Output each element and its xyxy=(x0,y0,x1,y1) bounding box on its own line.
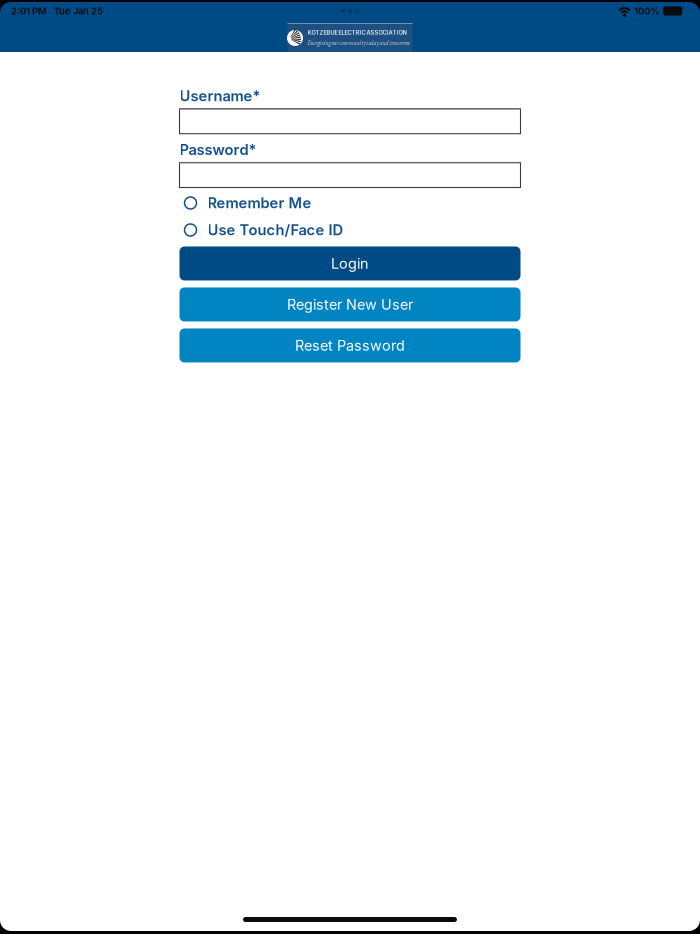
button[interactable]: Login xyxy=(179,246,520,280)
staticText: Register New User xyxy=(287,296,413,313)
button[interactable]: Use Touch/Face ID xyxy=(179,216,520,243)
staticText: Reset Password xyxy=(295,337,405,354)
staticText: Tue Jan 25 xyxy=(54,5,103,17)
staticText: 100% xyxy=(634,5,659,17)
staticText: Remember Me xyxy=(207,194,311,212)
staticText: Password* xyxy=(179,141,256,158)
staticText: Use Touch/Face ID xyxy=(207,221,343,239)
button[interactable]: Remember Me xyxy=(179,189,520,216)
button[interactable]: Reset Password xyxy=(179,328,520,362)
button[interactable]: Multitasking controls xyxy=(328,8,372,14)
staticText: Login xyxy=(331,255,369,272)
button[interactable]: Register New User xyxy=(179,287,520,321)
staticText: 2:01 PM xyxy=(11,5,47,17)
staticText: KOTZEBUE ELECTRIC ASSOCIATION xyxy=(307,29,406,36)
staticText: Username* xyxy=(179,87,260,105)
staticText: Energizing our community today and tomor… xyxy=(307,39,410,47)
